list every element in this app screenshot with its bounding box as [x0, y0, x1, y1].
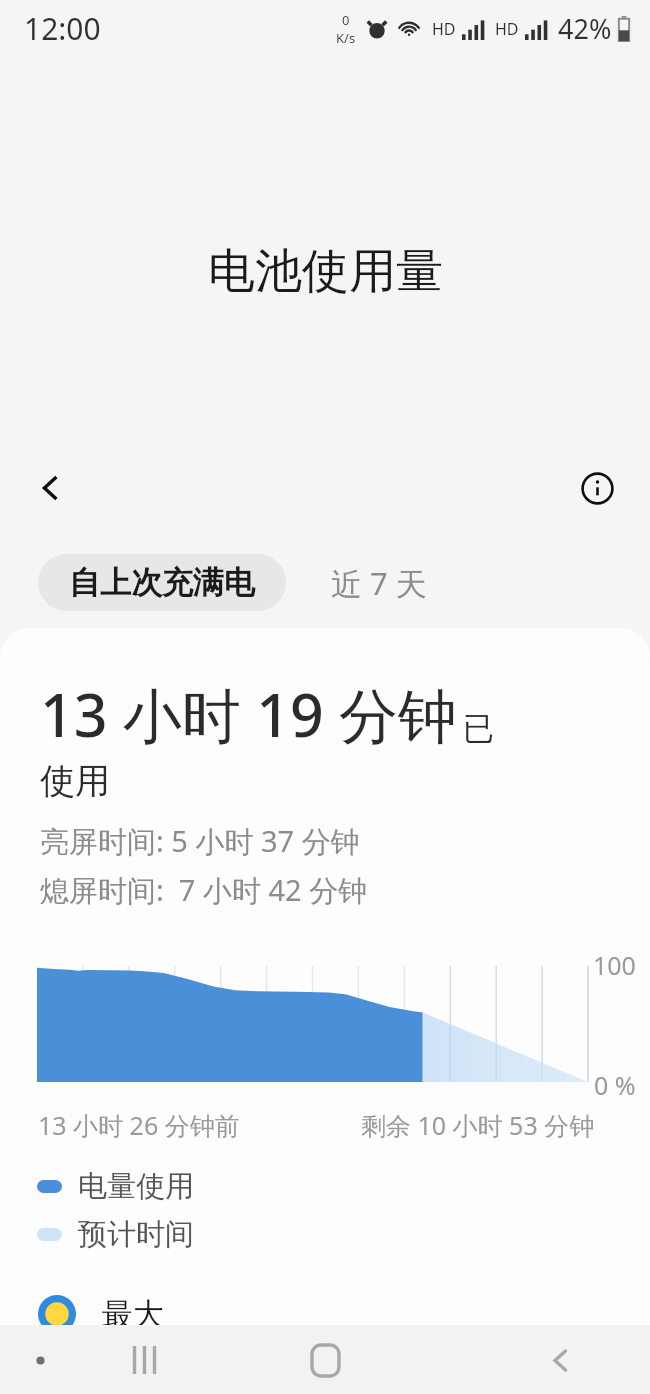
staticText: 已 — [463, 709, 494, 748]
button[interactable]: Information — [568, 459, 626, 517]
button[interactable]: 自上次充满电 — [38, 554, 286, 611]
button[interactable]: Recents — [112, 1328, 176, 1392]
staticText: 熄屏时间: 7 小时 42 分钟 — [40, 870, 368, 910]
button[interactable]: 近 7 天 — [286, 554, 472, 611]
staticText: 电池使用量 — [208, 242, 443, 301]
button[interactable]: More options — [16, 1336, 64, 1384]
staticText: 0 % — [594, 1068, 636, 1102]
staticText: HD — [432, 18, 456, 40]
staticText: 电量使用 — [78, 1168, 194, 1205]
staticText: 亮屏时间: 5 小时 37 分钟 — [40, 821, 360, 861]
staticText: HD — [495, 18, 519, 40]
staticText: 最大 — [102, 1295, 164, 1334]
staticText: 自上次充满电 — [69, 563, 255, 602]
staticText: K/s — [336, 29, 356, 47]
staticText: 剩余 10 小时 53 分钟 — [361, 1108, 595, 1142]
staticText: 13 小时 19 分钟 — [40, 674, 458, 755]
staticText: 13 小时 26 分钟前 — [38, 1108, 240, 1142]
button[interactable]: Home — [293, 1328, 357, 1392]
button[interactable]: Back — [528, 1328, 592, 1392]
staticText: 使用 — [40, 759, 110, 803]
staticText: 100 — [593, 948, 636, 982]
staticText: 近 7 天 — [331, 562, 427, 604]
staticText: 0 — [342, 11, 350, 29]
staticText: 12:00 — [24, 8, 101, 49]
staticText: 42% — [558, 10, 612, 47]
staticText: 预计时间 — [78, 1216, 194, 1253]
button[interactable]: 最大 — [0, 1279, 650, 1349]
button[interactable]: Back — [22, 459, 80, 517]
